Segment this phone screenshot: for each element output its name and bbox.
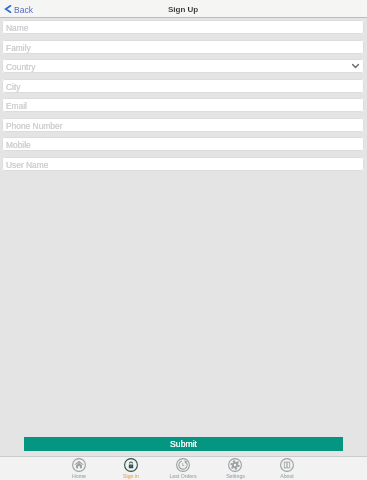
button[interactable]: Name — [2, 20, 364, 34]
staticText: Submit — [170, 439, 198, 449]
staticText: Settings — [226, 473, 245, 479]
staticText: Back — [14, 5, 33, 14]
staticText: Email — [6, 101, 27, 110]
button[interactable]: User Name — [2, 157, 364, 171]
staticText: Last Orders — [169, 473, 197, 479]
staticText: Name — [6, 23, 29, 32]
staticText: Sign in — [123, 473, 139, 479]
button[interactable]: Country — [2, 59, 364, 73]
staticText: City — [6, 82, 21, 91]
staticText: Sign Up — [168, 5, 199, 14]
staticText: Phone Number — [6, 121, 63, 130]
staticText: Mobile — [6, 140, 31, 149]
staticText: Country — [6, 62, 36, 71]
button[interactable]: About — [261, 456, 313, 480]
button[interactable]: Mobile — [2, 137, 364, 151]
staticText: About — [280, 473, 294, 479]
button[interactable]: Submit — [24, 437, 343, 451]
button[interactable]: Family — [2, 40, 364, 54]
button[interactable]: Phone Number — [2, 118, 364, 132]
staticText: Home — [72, 473, 86, 479]
button[interactable]: Last Orders — [157, 456, 209, 480]
staticText: Family — [6, 43, 31, 52]
button[interactable]: Back — [5, 0, 33, 18]
button[interactable]: Home — [53, 456, 105, 480]
button[interactable]: Sign in — [105, 456, 157, 480]
staticText: User Name — [6, 160, 49, 169]
button[interactable]: Email — [2, 98, 364, 112]
button[interactable]: City — [2, 79, 364, 93]
button[interactable]: Settings — [209, 456, 261, 480]
